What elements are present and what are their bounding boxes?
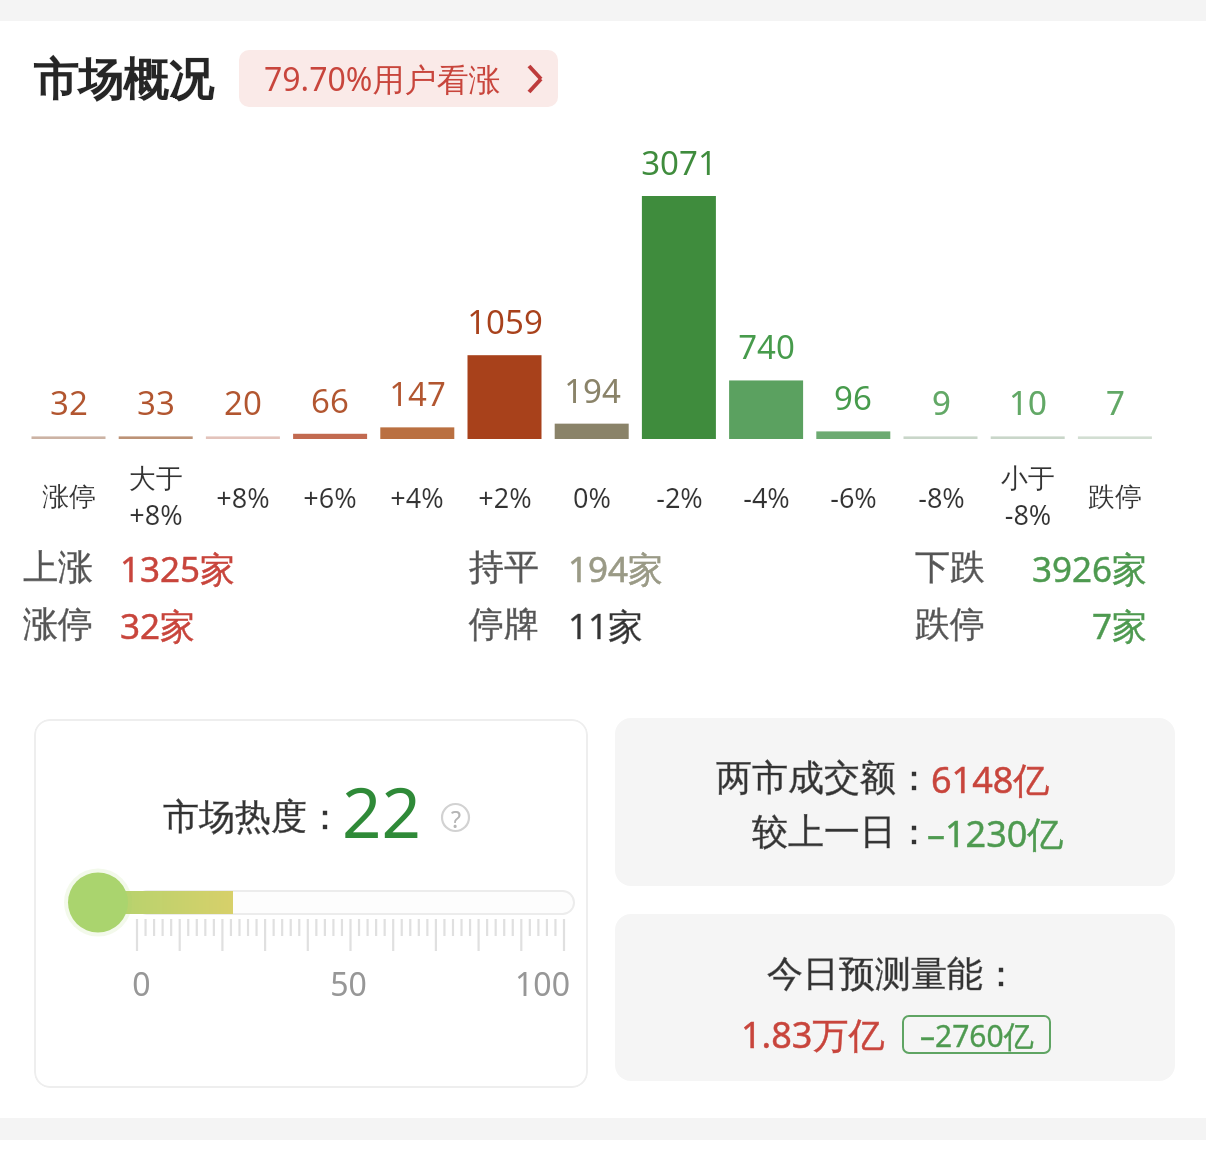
staticText: 6148亿: [931, 755, 1050, 804]
staticText: 较上一日：: [752, 809, 932, 854]
staticText: 100: [515, 962, 570, 1006]
staticText: 147: [389, 371, 446, 416]
staticText: 194: [564, 368, 621, 413]
staticText: 小于 -8%: [1001, 462, 1055, 532]
staticText: 1.83万亿: [741, 1010, 885, 1059]
staticText: 79.70%用户看涨: [264, 57, 501, 101]
staticText: 两市成交额：: [716, 755, 932, 800]
staticText: 66: [311, 378, 349, 423]
staticText: +2%: [478, 479, 532, 516]
staticText: 今日预测量能：: [767, 951, 1019, 996]
staticText: 20: [224, 380, 262, 425]
staticText: 较上一日：: [752, 809, 932, 854]
staticText: –1230亿: [927, 809, 1064, 858]
staticText: 下跌: [915, 545, 985, 589]
staticText: 涨停: [23, 602, 93, 646]
staticText: 跌停: [1088, 480, 1142, 514]
staticText: 22: [342, 764, 421, 858]
staticText: +6%: [303, 479, 357, 516]
staticText: 市场热度：: [163, 794, 343, 839]
staticText: 两市成交额：: [716, 755, 932, 800]
button[interactable]: 停牌: [469, 602, 539, 646]
staticText: 740: [738, 324, 795, 369]
staticText: 下跌: [915, 545, 985, 589]
staticText: 96: [834, 375, 872, 420]
staticText: 涨停: [42, 480, 96, 514]
staticText: 0%: [573, 479, 611, 516]
staticText: 市场热度：: [163, 794, 343, 839]
staticText: 7: [1106, 380, 1125, 425]
staticText: 持平: [469, 545, 539, 589]
staticText: 3926家: [1031, 545, 1147, 593]
staticText: 194家: [568, 545, 664, 593]
staticText: 大于 +8%: [129, 462, 183, 532]
staticText: 32家: [120, 602, 196, 650]
staticText: ?: [451, 803, 461, 832]
button[interactable]: 上涨: [23, 545, 93, 589]
staticText: 7家: [1091, 602, 1147, 650]
button[interactable]: 跌停: [915, 602, 985, 646]
staticText: 1.83万亿: [741, 1010, 885, 1059]
button[interactable]: 市场热度：: [34, 719, 588, 1088]
staticText: 194家: [568, 545, 664, 593]
staticText: -4%: [743, 479, 790, 516]
staticText: 跌停: [915, 602, 985, 646]
staticText: -8%: [918, 479, 965, 516]
staticText: 持平: [469, 545, 539, 589]
staticText: 6148亿: [931, 755, 1050, 804]
staticText: 跌停: [915, 602, 985, 646]
staticText: 10: [1009, 380, 1047, 425]
staticText: 33: [137, 380, 175, 425]
button[interactable]: 涨停: [23, 602, 93, 646]
staticText: 停牌: [469, 602, 539, 646]
staticText: –2760亿: [920, 1015, 1034, 1054]
button[interactable]: 持平: [469, 545, 539, 589]
staticText: 1059: [467, 299, 543, 344]
staticText: 32家: [120, 602, 196, 650]
staticText: -6%: [830, 479, 877, 516]
staticText: 50: [330, 962, 367, 1006]
staticText: 3071: [641, 140, 717, 185]
staticText: 1325家: [120, 545, 236, 593]
button[interactable]: 79.70%用户看涨: [239, 50, 558, 107]
staticText: 7家: [1091, 602, 1147, 650]
staticText: 11家: [568, 602, 644, 650]
staticText: 今日预测量能：: [767, 951, 1019, 996]
staticText: –2760亿: [920, 1015, 1034, 1054]
staticText: 停牌: [469, 602, 539, 646]
staticText: 32: [50, 380, 88, 425]
staticText: +8%: [216, 479, 270, 516]
button[interactable]: 两市成交额：: [615, 718, 1175, 886]
button[interactable]: 下跌: [915, 545, 985, 589]
staticText: 市场概况: [33, 52, 213, 109]
staticText: 1325家: [120, 545, 236, 593]
staticText: 上涨: [23, 545, 93, 589]
staticText: 上涨: [23, 545, 93, 589]
button[interactable]: 市场热度说明: [441, 803, 470, 832]
staticText: -2%: [656, 479, 703, 516]
staticText: 涨停: [23, 602, 93, 646]
staticText: 3926家: [1031, 545, 1147, 593]
staticText: 9: [932, 380, 951, 425]
button[interactable]: 今日预测量能：: [615, 914, 1175, 1081]
staticText: –1230亿: [927, 809, 1064, 858]
staticText: 0: [132, 962, 151, 1006]
staticText: +4%: [390, 479, 444, 516]
staticText: 11家: [568, 602, 644, 650]
